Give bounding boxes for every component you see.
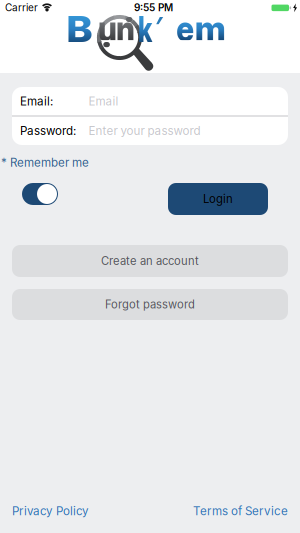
staticText: Forgot password bbox=[105, 298, 195, 311]
button[interactable]: Email: bbox=[12, 87, 288, 115]
button[interactable]: Create an account bbox=[12, 245, 288, 277]
staticText: Privacy Policy bbox=[12, 504, 89, 518]
staticText: * Remember me bbox=[1, 155, 89, 169]
staticText: Password: bbox=[20, 124, 76, 138]
button[interactable]: Password: bbox=[12, 116, 288, 145]
staticText: Terms of Service bbox=[193, 504, 288, 518]
button[interactable]: Forgot password bbox=[12, 289, 288, 320]
staticText: Create an account bbox=[101, 254, 199, 268]
staticText: Email: bbox=[20, 94, 53, 108]
button[interactable]: Login bbox=[168, 183, 268, 215]
button[interactable]: Remember me bbox=[22, 183, 58, 205]
button[interactable]: Privacy Policy bbox=[12, 504, 89, 518]
button[interactable]: Terms of Service bbox=[193, 504, 288, 518]
staticText: Carrier bbox=[5, 1, 38, 14]
staticText: Enter your password bbox=[88, 124, 200, 138]
staticText: 9:55 PM bbox=[134, 1, 173, 14]
staticText: Login bbox=[203, 192, 233, 206]
staticText: Email bbox=[88, 94, 118, 108]
